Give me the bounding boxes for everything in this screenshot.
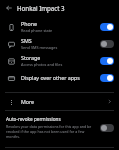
- staticText: Revokes your data permissions for this a…: [6, 124, 97, 139]
- staticText: Honkai Impact 3: [17, 4, 65, 12]
- staticText: SMS: [21, 37, 32, 44]
- button[interactable]: Back: [3, 2, 14, 13]
- button[interactable]: Storage: [0, 52, 119, 69]
- button[interactable]: SMS: [0, 35, 119, 52]
- button[interactable]: On: [100, 57, 114, 65]
- button[interactable]: Auto-revoke permissions: [0, 116, 119, 139]
- staticText: More: [21, 98, 107, 105]
- button[interactable]: Phone: [0, 18, 119, 35]
- staticText: Storage: [21, 54, 41, 61]
- button[interactable]: Off: [100, 40, 114, 48]
- button[interactable]: Off: [100, 124, 114, 132]
- staticText: Send SMS messages: [21, 45, 58, 50]
- staticText: Auto-revoke permissions: [6, 116, 61, 122]
- button[interactable]: On: [100, 74, 114, 82]
- staticText: Phone: [21, 20, 37, 27]
- staticText: Access photos and files: [21, 62, 63, 67]
- button[interactable]: On: [100, 23, 114, 31]
- button[interactable]: Display over other apps: [0, 69, 119, 86]
- staticText: Display over other apps: [21, 74, 80, 81]
- staticText: Read phone state: [21, 28, 53, 33]
- button[interactable]: More: [0, 93, 119, 110]
